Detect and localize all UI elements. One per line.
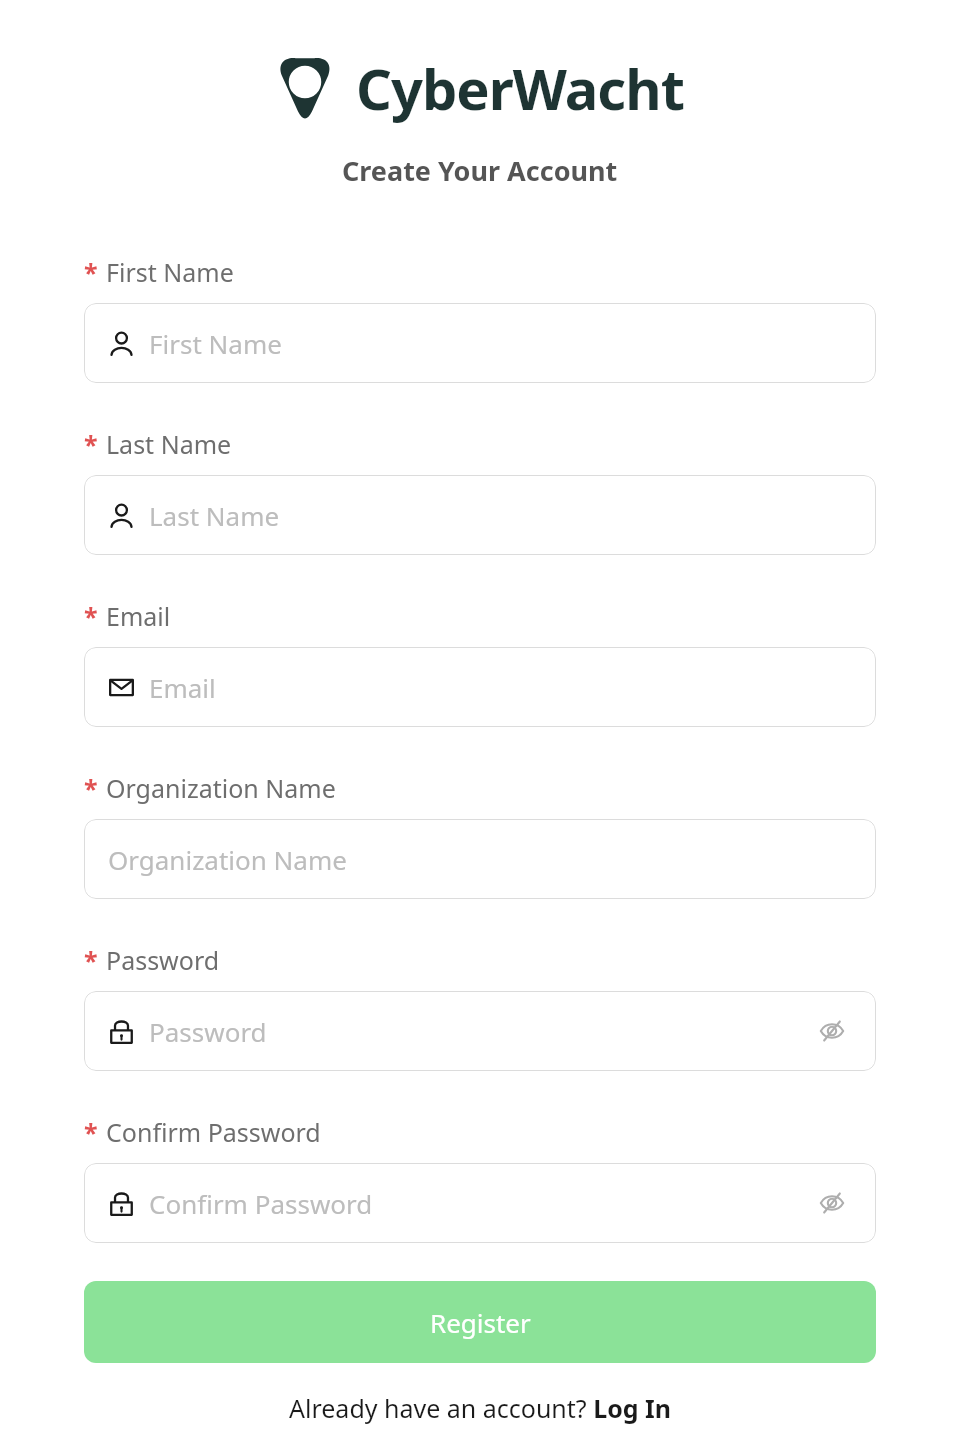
staticText: Password (149, 1014, 812, 1049)
staticText: Organization Name (108, 842, 852, 877)
button[interactable]: Show password (812, 1011, 852, 1051)
button[interactable]: Already have an account? Log In (289, 1391, 672, 1425)
staticText: * (84, 1115, 98, 1149)
staticText: * (84, 771, 98, 805)
staticText: * (84, 255, 98, 289)
staticText: Password (106, 943, 220, 977)
staticText: * (84, 943, 98, 977)
staticText: Register (430, 1305, 531, 1340)
button[interactable]: Show password (812, 1183, 852, 1223)
staticText: * (84, 599, 98, 633)
staticText: Last Name (106, 427, 232, 461)
staticText: First Name (106, 255, 234, 289)
staticText: Create Your Account (342, 152, 618, 189)
button[interactable]: Last Name (84, 475, 876, 555)
button[interactable]: Email (84, 647, 876, 727)
button[interactable]: Register (84, 1281, 876, 1363)
staticText: Email (149, 670, 852, 705)
button[interactable]: First Name (84, 303, 876, 383)
staticText: * (84, 427, 98, 461)
staticText: Confirm Password (106, 1115, 321, 1149)
button[interactable]: Confirm Password (84, 1163, 876, 1243)
staticText: Organization Name (106, 771, 336, 805)
staticText: Already have an account? Log In (289, 1391, 672, 1425)
staticText: Email (106, 599, 171, 633)
staticText: Last Name (149, 498, 852, 533)
button[interactable]: Password (84, 991, 876, 1071)
staticText: Confirm Password (149, 1186, 812, 1221)
button[interactable]: Organization Name (84, 819, 876, 899)
staticText: CyberWacht (356, 50, 684, 126)
staticText: First Name (149, 326, 852, 361)
